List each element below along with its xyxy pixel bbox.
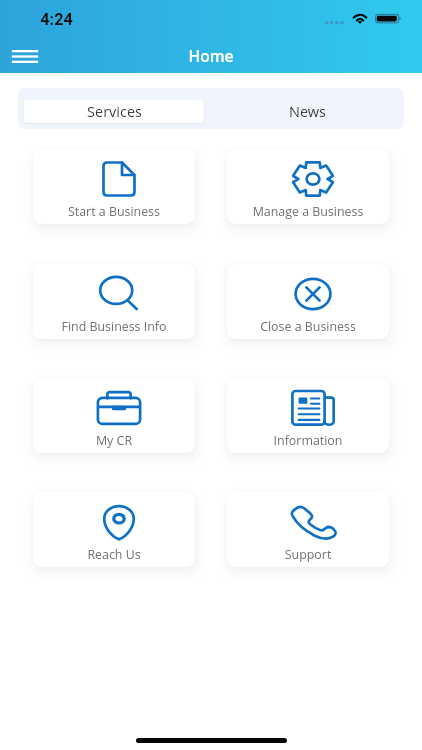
button[interactable]: Start a Business [33, 149, 195, 224]
staticText: Reach Us [33, 546, 195, 563]
button[interactable]: My CR [33, 378, 195, 453]
staticText: Find Business Info [33, 318, 195, 335]
button[interactable]: News [211, 88, 404, 129]
staticText: My CR [33, 432, 195, 449]
staticText: Home [0, 45, 422, 66]
button[interactable]: Reach Us [33, 492, 195, 567]
button[interactable]: Support [227, 492, 389, 567]
staticText: Support [227, 546, 389, 563]
staticText: Manage a Business [227, 203, 389, 220]
button[interactable]: Services [24, 100, 204, 123]
button[interactable]: Find Business Info [33, 264, 195, 339]
staticText: Information [227, 432, 389, 449]
staticText: News [289, 102, 326, 122]
staticText: Services [87, 102, 142, 122]
staticText: Close a Business [227, 318, 389, 335]
staticText: Start a Business [33, 203, 195, 220]
staticText: 4:24 [40, 10, 73, 29]
button[interactable]: Open navigation menu [5, 42, 45, 70]
button[interactable]: Close a Business [227, 264, 389, 339]
button[interactable]: Information [227, 378, 389, 453]
button[interactable]: Manage a Business [227, 149, 389, 224]
